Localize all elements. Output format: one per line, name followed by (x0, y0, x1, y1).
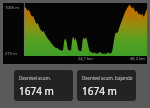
button[interactable]: Desnivel acum. bajando (77, 70, 136, 101)
staticText: 1674 m (19, 84, 54, 98)
staticText: 24,1 km (78, 56, 93, 61)
staticText: 1065 m (5, 5, 19, 10)
button[interactable]: Desnivel acum. subiendo (14, 70, 73, 101)
button[interactable]: 1065 m (3, 3, 147, 64)
staticText: 219 m (5, 51, 17, 56)
staticText: Desnivel acum. subiendo (19, 75, 70, 81)
staticText: 1674 m (82, 84, 117, 98)
staticText: Desnivel acum. bajando (82, 75, 133, 81)
staticText: 48,2 km (130, 56, 145, 61)
